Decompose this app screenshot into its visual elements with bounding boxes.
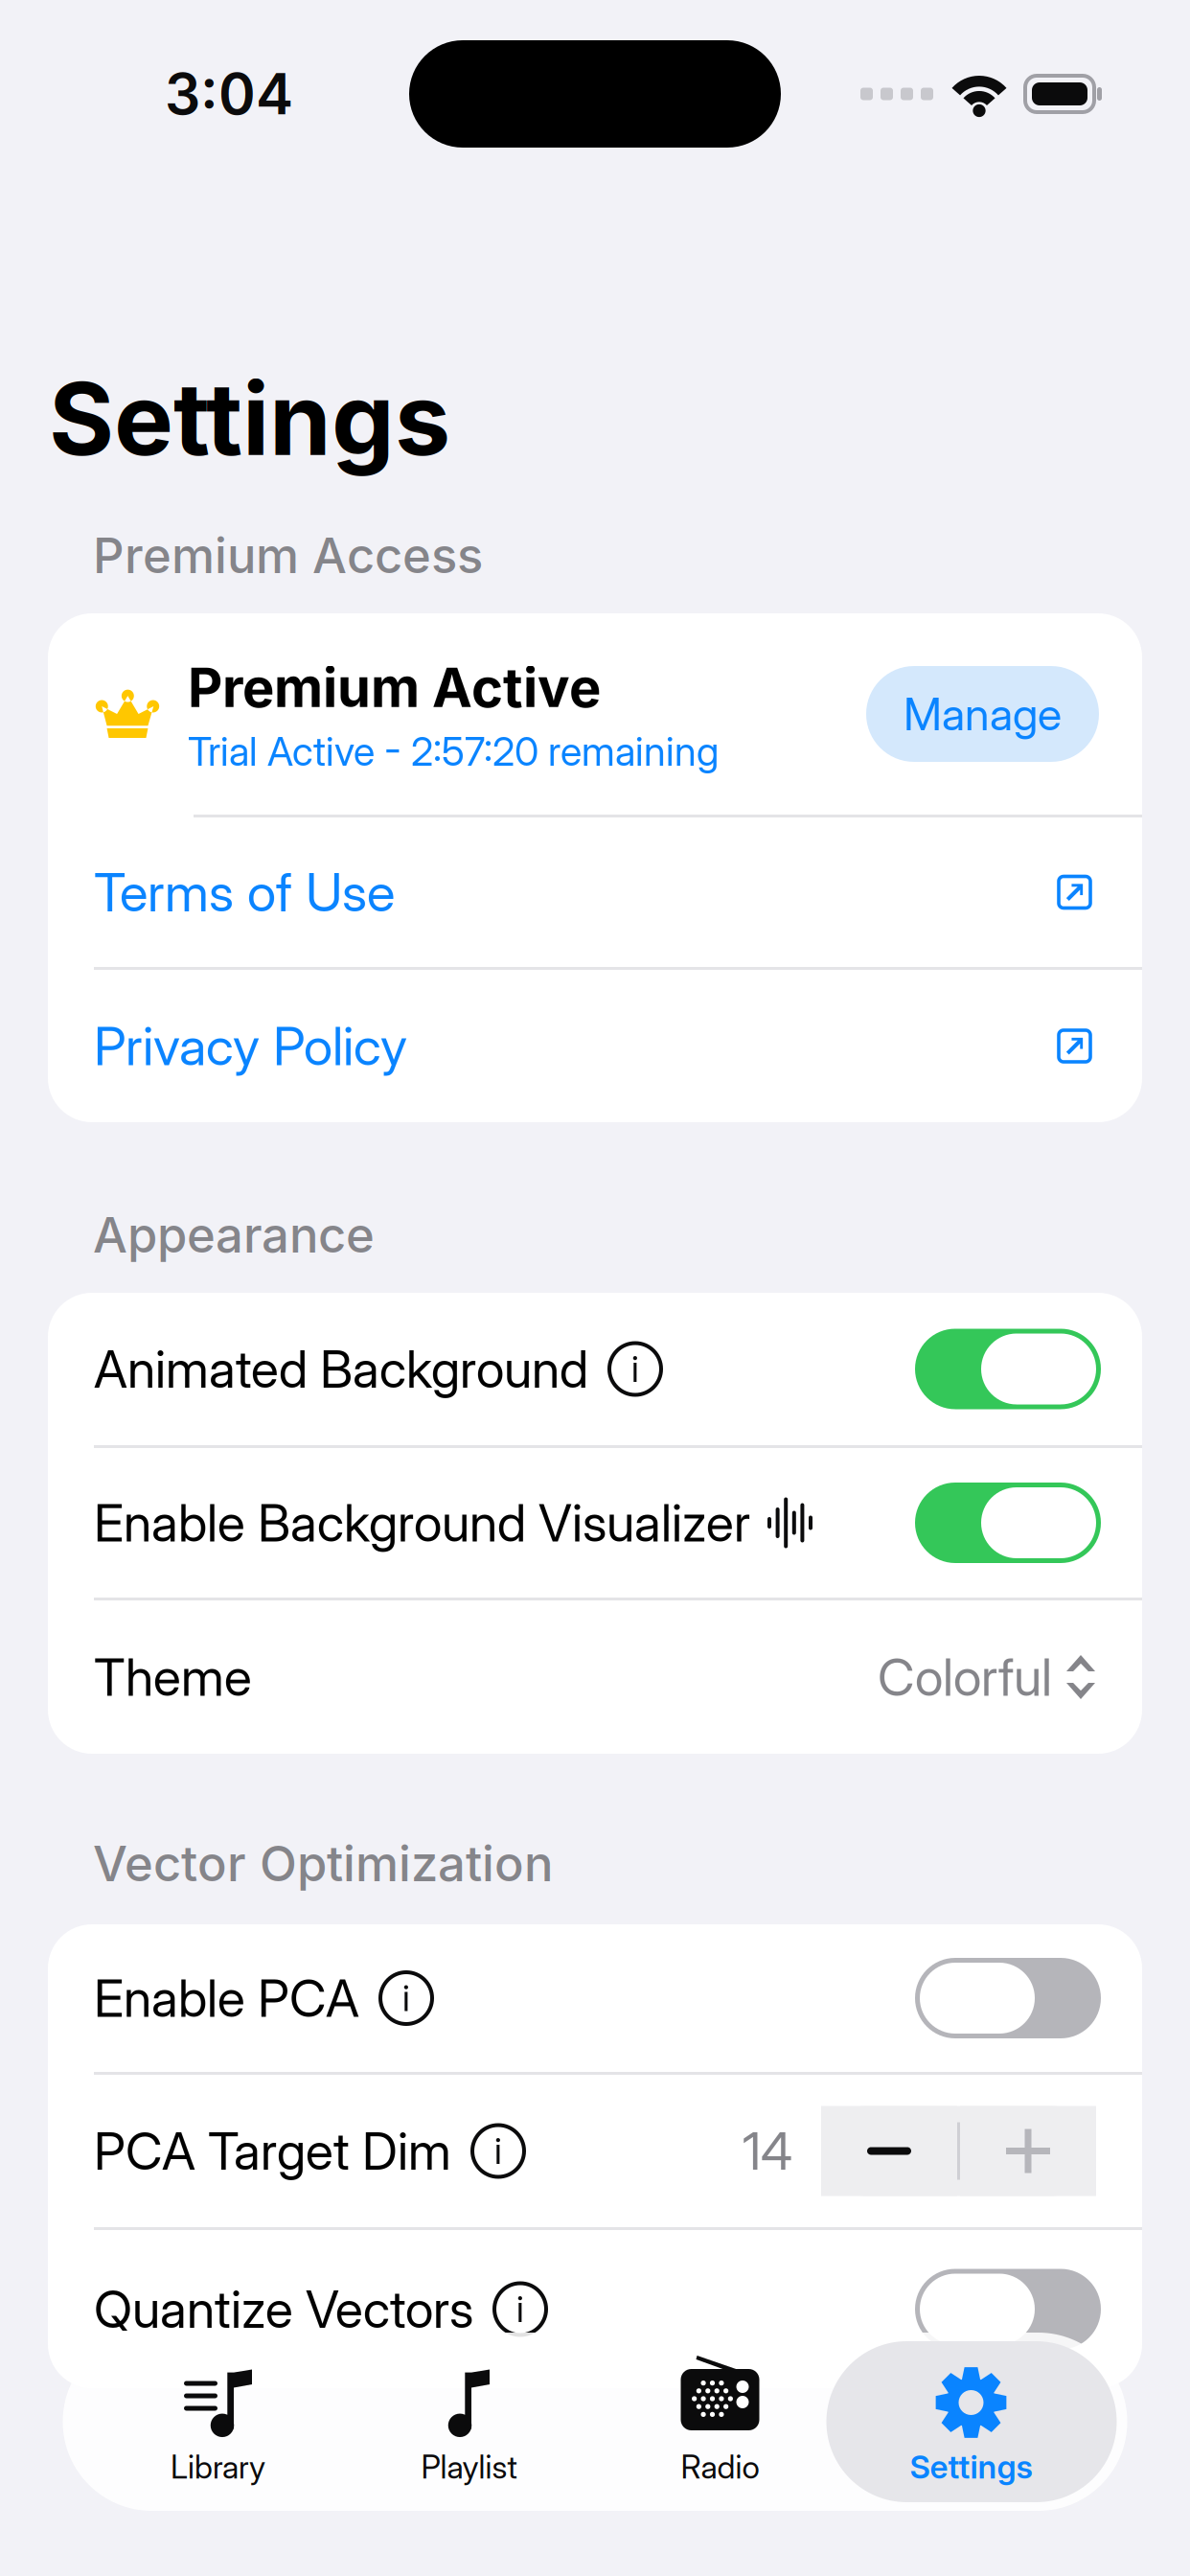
button[interactable]: Manage — [866, 666, 1099, 762]
button[interactable]: Animated Background — [915, 1329, 1101, 1409]
staticText: Animated Background — [94, 1338, 588, 1400]
staticText: Theme — [94, 1646, 252, 1708]
staticText: i — [494, 2129, 502, 2173]
staticText: i — [402, 1976, 410, 2020]
staticText: Vector Optimization — [93, 1834, 553, 1893]
button[interactable]: Radio — [595, 2333, 846, 2511]
staticText: Privacy Policy — [94, 1014, 407, 1078]
staticText: Appearance — [93, 1205, 375, 1264]
staticText: Enable PCA — [94, 1967, 359, 2029]
staticText: Quantize Vectors — [94, 2278, 473, 2340]
staticText: Premium Access — [93, 526, 483, 585]
staticText: Settings — [910, 2447, 1032, 2486]
button[interactable]: Privacy Policy — [48, 970, 1142, 1122]
staticText: i — [516, 2287, 524, 2331]
staticText: Enable Background Visualizer — [94, 1492, 750, 1554]
staticText: Trial Active - 2:57:20 remaining — [188, 727, 719, 775]
button[interactable]: Terms of Use — [48, 817, 1142, 967]
button[interactable]: Library — [92, 2333, 343, 2511]
staticText: Settings — [49, 359, 450, 479]
staticText: i — [631, 1347, 639, 1391]
staticText: Terms of Use — [94, 860, 395, 924]
staticText: 14 — [743, 2120, 792, 2182]
button[interactable]: Settings — [846, 2333, 1097, 2511]
staticText: Premium Active — [188, 655, 601, 720]
button[interactable]: Colorful — [878, 1646, 1096, 1708]
staticText: Library — [171, 2447, 265, 2486]
button[interactable]: Increase — [960, 2106, 1096, 2196]
staticText: PCA Target Dim — [94, 2120, 451, 2182]
staticText: Manage — [904, 687, 1062, 741]
staticText: 3:04 — [165, 60, 293, 128]
staticText: Radio — [681, 2447, 759, 2486]
button[interactable]: Enable PCA — [915, 1958, 1101, 2038]
button[interactable]: Quantize Vectors — [915, 2269, 1101, 2349]
staticText: Colorful — [878, 1646, 1052, 1708]
button[interactable]: Enable Background Visualizer — [915, 1483, 1101, 1563]
button[interactable]: Decrease — [821, 2106, 957, 2196]
button[interactable]: Playlist — [343, 2333, 595, 2511]
staticText: Playlist — [421, 2447, 517, 2486]
